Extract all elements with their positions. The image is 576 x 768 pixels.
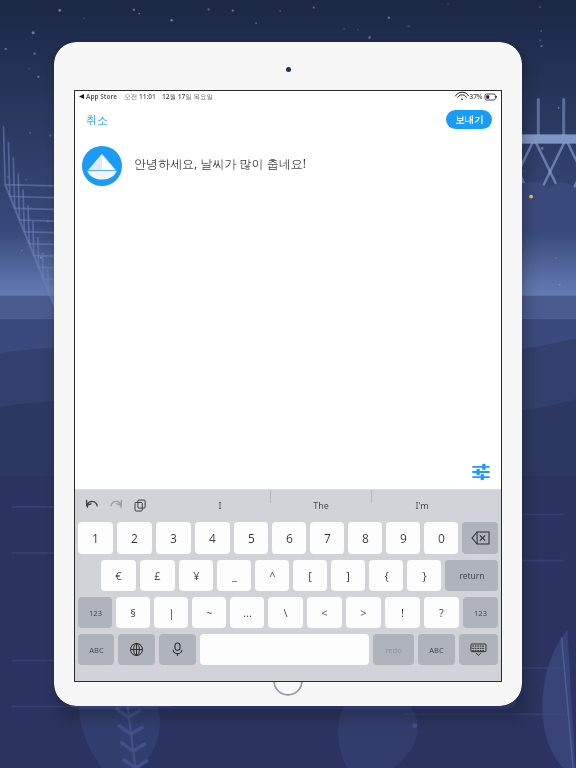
staticText: €: [115, 568, 122, 583]
button[interactable]: The: [271, 490, 371, 519]
staticText: £: [154, 568, 161, 583]
staticText: [: [308, 568, 312, 583]
staticText: ?: [439, 605, 444, 620]
staticText: }: [422, 568, 427, 583]
staticText: …: [243, 605, 252, 620]
button[interactable]: {: [369, 560, 403, 591]
staticText: The: [313, 499, 329, 511]
staticText: I'm: [415, 499, 429, 511]
button[interactable]: redo: [373, 634, 414, 665]
staticText: 1: [92, 530, 99, 546]
staticText: \: [283, 605, 288, 620]
staticText: 7: [324, 530, 331, 546]
staticText: return: [459, 570, 485, 582]
button[interactable]: 8: [348, 522, 382, 554]
button[interactable]: <: [307, 597, 342, 628]
staticText: ~: [206, 605, 213, 620]
staticText: <: [321, 605, 328, 620]
button[interactable]: Paste: [132, 497, 148, 513]
staticText: ^: [269, 568, 276, 583]
staticText: ABC: [429, 645, 444, 655]
button[interactable]: \: [268, 597, 303, 628]
button[interactable]: Dictate: [159, 634, 196, 665]
button[interactable]: 취소: [86, 113, 108, 127]
staticText: 0: [438, 530, 445, 546]
button[interactable]: £: [140, 560, 175, 591]
button[interactable]: I: [169, 490, 270, 519]
staticText: 123: [89, 608, 102, 618]
button[interactable]: 7: [310, 522, 344, 554]
button[interactable]: }: [407, 560, 441, 591]
staticText: 12월 17일 목요일: [162, 92, 213, 101]
staticText: 보내기: [455, 114, 484, 126]
button[interactable]: 1: [78, 522, 113, 554]
button[interactable]: I'm: [372, 490, 472, 519]
button[interactable]: ABC: [418, 634, 455, 665]
button[interactable]: 3: [156, 522, 191, 554]
button[interactable]: 2: [117, 522, 152, 554]
staticText: 123: [474, 608, 487, 618]
staticText: 5: [248, 530, 255, 546]
staticText: 오전 11:01: [124, 92, 156, 101]
button[interactable]: 0: [424, 522, 458, 554]
staticText: 4: [209, 530, 216, 546]
button[interactable]: ?: [424, 597, 459, 628]
staticText: {: [384, 568, 389, 583]
staticText: redo: [385, 645, 402, 655]
button[interactable]: 123: [78, 597, 112, 628]
button[interactable]: €: [101, 560, 136, 591]
staticText: ¥: [193, 568, 200, 583]
button[interactable]: 4: [195, 522, 230, 554]
button[interactable]: Home: [273, 666, 303, 696]
button[interactable]: Redo: [108, 497, 124, 513]
staticText: 3: [170, 530, 177, 546]
staticText: I: [218, 499, 222, 511]
button[interactable]: |: [154, 597, 188, 628]
staticText: 2: [131, 530, 138, 546]
staticText: 안녕하세요, 날씨가 많이 춥네요!: [134, 155, 306, 171]
staticText: §: [130, 605, 136, 620]
button[interactable]: …: [230, 597, 264, 628]
button[interactable]: Hide keyboard: [459, 634, 498, 665]
button[interactable]: Undo: [84, 497, 100, 513]
button[interactable]: ABC: [78, 634, 114, 665]
button[interactable]: _: [217, 560, 251, 591]
staticText: |: [168, 605, 175, 620]
staticText: 9: [400, 530, 407, 546]
button[interactable]: return: [445, 560, 498, 591]
button[interactable]: [: [293, 560, 327, 591]
staticText: 37%: [469, 92, 483, 101]
staticText: 8: [362, 530, 369, 546]
button[interactable]: ]: [331, 560, 365, 591]
button[interactable]: ¥: [179, 560, 213, 591]
staticText: 취소: [86, 113, 108, 127]
button[interactable]: §: [116, 597, 150, 628]
staticText: ]: [346, 568, 350, 583]
staticText: ABC: [89, 645, 104, 655]
button[interactable]: Backspace: [462, 522, 498, 554]
button[interactable]: 6: [272, 522, 306, 554]
button[interactable]: 9: [386, 522, 420, 554]
staticText: _: [232, 568, 237, 583]
staticText: 6: [286, 530, 293, 546]
button[interactable]: ~: [192, 597, 226, 628]
button[interactable]: ^: [255, 560, 289, 591]
staticText: >: [360, 605, 367, 620]
staticText: App Store: [86, 92, 117, 101]
button[interactable]: Change keyboard: [118, 634, 155, 665]
button[interactable]: 보내기: [446, 110, 492, 129]
button[interactable]: Formatting options: [470, 461, 492, 483]
button[interactable]: >: [346, 597, 381, 628]
button[interactable]: 123: [463, 597, 498, 628]
staticText: !: [401, 605, 404, 620]
button[interactable]: !: [385, 597, 420, 628]
button[interactable]: 5: [234, 522, 268, 554]
